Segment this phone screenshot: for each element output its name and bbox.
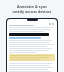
staticText: neatly across devices	[0, 9, 64, 14]
staticText: Annotate & sync	[0, 4, 64, 9]
button[interactable]: Share	[7, 19, 57, 72]
